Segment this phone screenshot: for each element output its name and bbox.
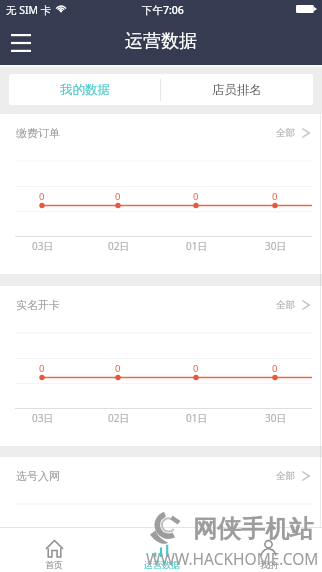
staticText: 全部 (276, 127, 295, 139)
button[interactable]: 我的 (215, 528, 322, 572)
button[interactable]: 我的数据 (9, 74, 160, 105)
staticText: 缴费订单 (16, 126, 60, 140)
staticText: 店员排名 (212, 82, 262, 98)
staticText: 我的 (260, 559, 278, 570)
staticText: 首页 (45, 559, 63, 570)
button[interactable]: 首页 (0, 528, 108, 572)
staticText: 0 (193, 190, 199, 203)
staticText: 0 (272, 362, 278, 375)
staticText: 30日 (265, 239, 287, 253)
staticText: 01日 (186, 239, 208, 253)
staticText: 0 (115, 190, 121, 203)
staticText: 0 (193, 362, 199, 375)
staticText: 运营数据 (125, 30, 197, 53)
staticText: 0 (272, 190, 278, 203)
staticText: WWW.HACKHOME.COM (146, 548, 319, 569)
staticText: 实名开卡 (16, 298, 60, 312)
button[interactable]: 店员排名 (161, 74, 313, 105)
staticText: 运营数据 (144, 559, 180, 570)
staticText: 0 (39, 190, 45, 203)
staticText: 0 (272, 533, 278, 546)
button[interactable]: 全部 (274, 295, 312, 315)
staticText: 30日 (265, 411, 287, 425)
staticText: 03日 (32, 411, 54, 425)
staticText: 全部 (276, 299, 295, 311)
staticText: 01日 (186, 411, 208, 425)
button[interactable]: 全部 (274, 466, 312, 486)
staticText: 我的数据 (60, 82, 110, 98)
staticText: 全部 (276, 470, 295, 482)
button[interactable]: Menu (3, 25, 39, 61)
staticText: 下午7:06 (142, 3, 184, 17)
staticText: 0 (193, 533, 199, 546)
staticText: 0 (115, 362, 121, 375)
staticText: 02日 (108, 411, 130, 425)
button[interactable]: 全部 (274, 123, 312, 143)
button[interactable]: 运营数据 (108, 528, 215, 572)
staticText: 02日 (108, 239, 130, 253)
staticText: 网侠手机站 (193, 514, 313, 544)
staticText: 0 (39, 362, 45, 375)
staticText: 03日 (32, 239, 54, 253)
staticText: 无 SIM 卡 (6, 3, 52, 17)
staticText: 选号入网 (16, 469, 60, 483)
